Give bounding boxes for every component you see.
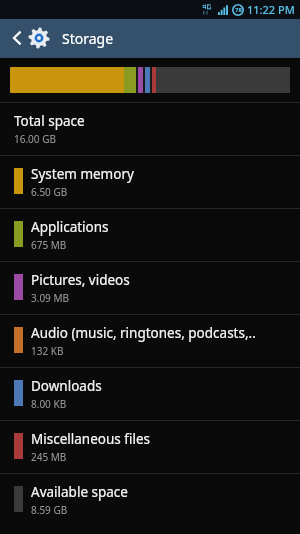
staticText: 8.00 KB (31, 397, 67, 411)
staticText: System memory (31, 165, 134, 183)
button[interactable]: Pictures, videos (0, 262, 300, 314)
staticText: Audio (music, ringtones, podcasts,.. (31, 324, 256, 342)
staticText: Available space (31, 483, 128, 501)
button[interactable]: Downloads (0, 368, 300, 420)
button[interactable]: System memory (0, 156, 300, 208)
button[interactable]: Applications (0, 209, 300, 261)
staticText: Miscellaneous files (31, 430, 150, 448)
button[interactable]: Back to Settings (0, 19, 62, 57)
button[interactable]: Total space (0, 103, 300, 155)
button[interactable]: Available space (0, 474, 300, 526)
staticText: Downloads (31, 377, 102, 395)
staticText: 78 (235, 6, 242, 14)
staticText: 3.09 MB (31, 291, 70, 305)
staticText: Pictures, videos (31, 271, 130, 289)
button[interactable]: Miscellaneous files (0, 421, 300, 473)
staticText: 132 KB (31, 344, 64, 358)
staticText: 675 MB (31, 238, 67, 252)
staticText: 11:22 PM (247, 2, 295, 17)
staticText: 6.50 GB (31, 185, 68, 199)
staticText: Total space (14, 112, 85, 130)
staticText: 245 MB (31, 450, 67, 464)
button[interactable]: Audio (music, ringtones, podcasts,.. (0, 315, 300, 367)
staticText: 16.00 GB (14, 132, 56, 146)
staticText: Applications (31, 218, 109, 236)
staticText: 8.59 GB (31, 503, 68, 517)
staticText: Storage (62, 29, 114, 48)
